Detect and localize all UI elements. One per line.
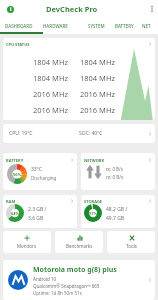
staticText: 33°C [31, 166, 43, 173]
staticText: i [10, 6, 12, 13]
staticText: 1804 MHz [33, 73, 68, 83]
button[interactable]: HARDWARE [37, 18, 73, 34]
staticText: Android 10 [33, 276, 57, 282]
button[interactable]: BATTERY [3, 153, 77, 190]
button[interactable]: App info [7, 6, 14, 13]
staticText: 1804 MHz [80, 73, 115, 83]
staticText: Uptime: 1d 8h 50m 51s [33, 290, 82, 296]
staticText: BATTERY [6, 158, 24, 163]
staticText: Qualcomm® Snapdragon™ 665 [33, 283, 100, 289]
staticText: Benchmarks [66, 243, 93, 249]
button[interactable]: CPU: 19°C [3, 124, 155, 143]
button[interactable]: Tools [107, 231, 155, 253]
staticText: 2016 MHz [33, 89, 68, 99]
staticText: 56% [13, 172, 22, 177]
button[interactable]: Benchmarks [55, 231, 103, 253]
button[interactable]: CPU STATUS [3, 38, 155, 120]
staticText: 2016 MHz [80, 105, 115, 115]
button[interactable]: RAM [3, 195, 77, 228]
button[interactable]: More options [146, 0, 158, 18]
button[interactable]: SYSTEM [79, 18, 114, 34]
staticText: Tools [126, 243, 137, 249]
staticText: HARDWARE [43, 23, 68, 29]
staticText: SYSTEM [88, 23, 105, 29]
staticText: 97% [89, 211, 98, 216]
button[interactable]: DASHBOARD [0, 18, 37, 34]
button[interactable]: NET [135, 18, 158, 34]
staticText: 2.3 GB / [28, 206, 47, 213]
staticText: 1804 MHz [33, 57, 68, 67]
staticText: DASHBOARD [5, 23, 33, 29]
staticText: STORAGE [84, 199, 103, 204]
button[interactable]: STORAGE [81, 195, 155, 228]
staticText: 48.2 GB / [106, 206, 128, 213]
button[interactable]: NETWORK [81, 153, 155, 190]
staticText: BATTERY [115, 23, 134, 29]
staticText: 64% [11, 211, 20, 216]
staticText: 49.7 GB [106, 215, 125, 222]
staticText: CPU: 19°C [9, 130, 33, 137]
staticText: tx: 0 B/s [106, 166, 123, 172]
staticText: Monitors [17, 243, 37, 249]
button[interactable]: Monitors [3, 231, 51, 253]
staticText: rx: 0 B/s [106, 174, 124, 180]
staticText: SOC: 40°C [79, 130, 103, 137]
button[interactable]: Motorola moto g(8) plus [3, 260, 155, 300]
staticText: 1804 MHz [80, 57, 115, 67]
staticText: Discharging [31, 175, 57, 181]
staticText: DevCheck Pro [46, 4, 98, 14]
staticText: 3.6 GB [28, 215, 44, 222]
button[interactable]: BATTERY [114, 18, 135, 34]
staticText: RAM [6, 199, 16, 204]
staticText: Motorola moto g(8) plus [33, 265, 117, 275]
staticText: CPU STATUS [6, 42, 30, 47]
staticText: 2016 MHz [33, 105, 68, 115]
staticText: NET [142, 23, 151, 29]
staticText: 2016 MHz [80, 89, 115, 99]
staticText: NETWORK [84, 158, 105, 163]
